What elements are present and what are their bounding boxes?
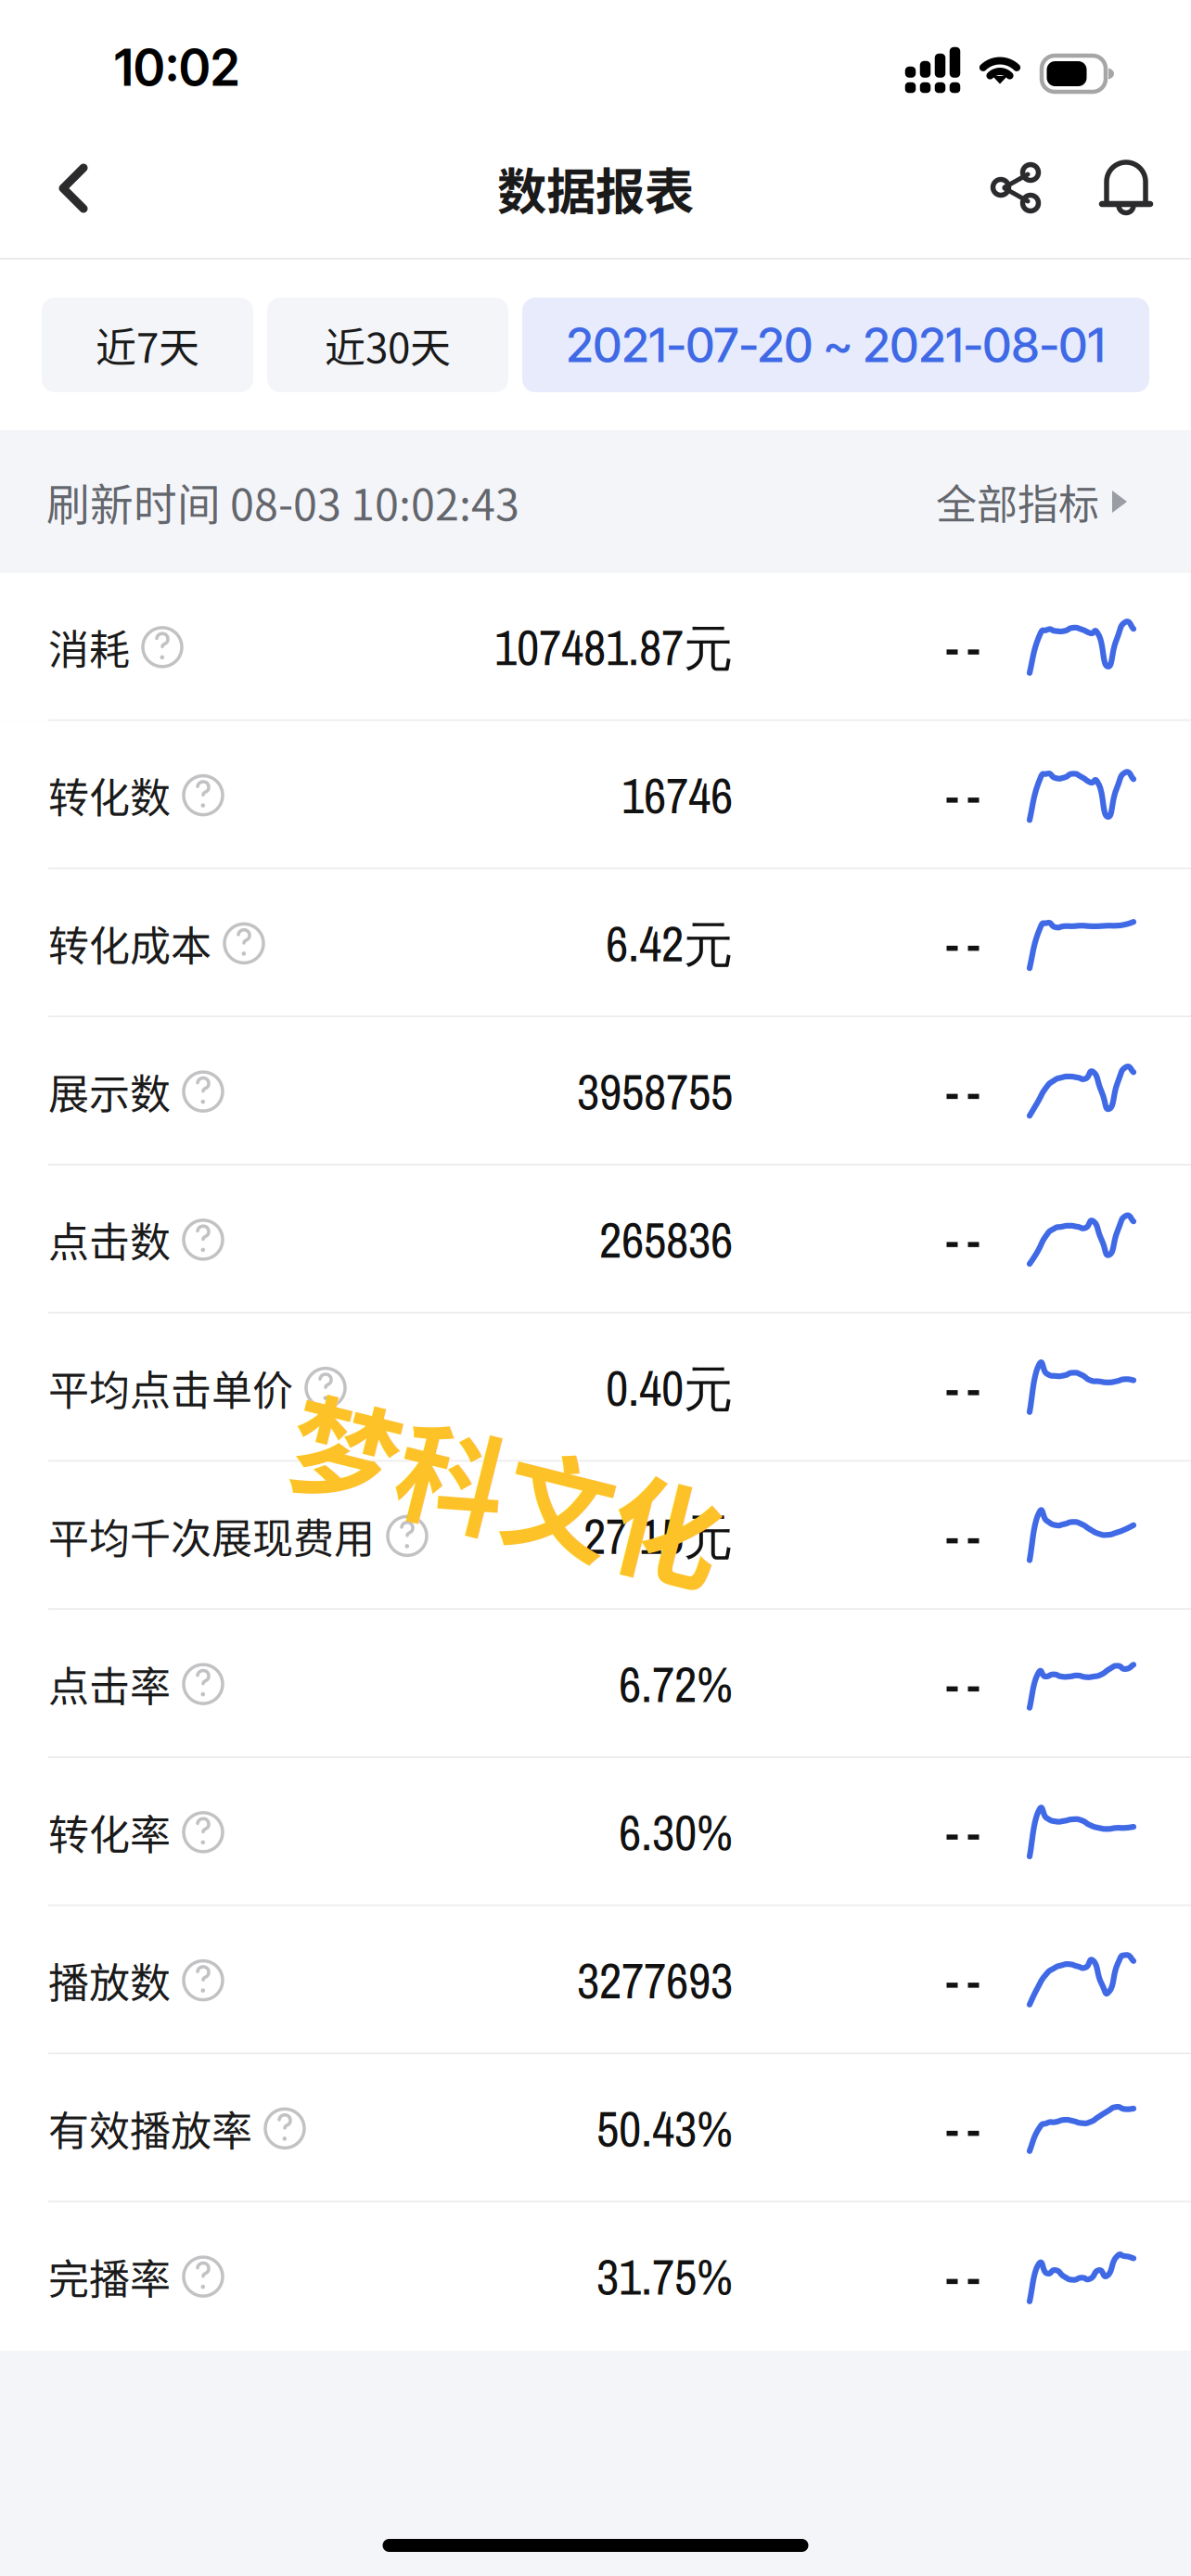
- staticText: 点击数: [48, 1210, 171, 1269]
- staticText: 6.72%: [619, 1651, 733, 1717]
- staticText: 2021-07-20 ~ 2021-08-01: [566, 316, 1105, 373]
- button[interactable]: 平均点击单价: [0, 1314, 1191, 1462]
- staticText: 近7天: [96, 315, 199, 374]
- staticText: 16746: [621, 762, 733, 829]
- staticText: 31.75%: [596, 2243, 733, 2310]
- staticText: 全部指标: [936, 472, 1099, 531]
- button[interactable]: 点击数: [0, 1166, 1191, 1314]
- button[interactable]: 展示数: [0, 1017, 1191, 1166]
- staticText: 数据报表: [497, 152, 694, 224]
- button[interactable]: 消耗: [0, 573, 1191, 721]
- staticText: 刷新时间 08-03 10:02:43: [46, 470, 519, 533]
- button[interactable]: 点击率: [0, 1610, 1191, 1758]
- staticText: 平均千次展现费用: [48, 1506, 375, 1565]
- button[interactable]: 完播率: [0, 2202, 1191, 2351]
- staticText: 近30天: [325, 315, 451, 374]
- staticText: 有效播放率: [48, 2099, 252, 2158]
- button[interactable]: 2021-07-20 ~ 2021-08-01: [522, 298, 1149, 392]
- button[interactable]: 播放数: [0, 1906, 1191, 2054]
- button[interactable]: 平均千次展现费用: [0, 1462, 1191, 1610]
- staticText: 6.42元: [606, 910, 733, 977]
- staticText: 点击率: [48, 1655, 171, 1714]
- button[interactable]: 近30天: [267, 298, 508, 392]
- staticText: 3277693: [577, 1947, 733, 2014]
- button[interactable]: Notifications: [1087, 139, 1165, 237]
- button[interactable]: 近7天: [42, 298, 253, 392]
- staticText: 10:02: [114, 38, 239, 98]
- staticText: 完播率: [48, 2247, 171, 2306]
- staticText: 转化数: [48, 766, 171, 825]
- staticText: 265836: [599, 1206, 733, 1273]
- button[interactable]: 转化数: [0, 721, 1191, 869]
- staticText: 播放数: [48, 1951, 171, 2010]
- staticText: 50.43%: [596, 2095, 733, 2162]
- staticText: 0.40元: [606, 1354, 733, 1421]
- staticText: 转化率: [48, 1803, 171, 1862]
- button[interactable]: 全部指标: [936, 444, 1127, 559]
- button[interactable]: 转化率: [0, 1758, 1191, 1906]
- button[interactable]: Share: [975, 141, 1057, 236]
- staticText: 107481.87元: [494, 614, 733, 680]
- staticText: 消耗: [48, 618, 130, 677]
- staticText: 27.15元: [583, 1503, 733, 1569]
- button[interactable]: 转化成本: [0, 869, 1191, 1018]
- staticText: 平均点击单价: [48, 1358, 293, 1417]
- staticText: 转化成本: [48, 914, 211, 973]
- staticText: 展示数: [48, 1062, 171, 1121]
- button[interactable]: Back: [28, 133, 119, 244]
- button[interactable]: 有效播放率: [0, 2054, 1191, 2203]
- staticText: 3958755: [577, 1058, 733, 1125]
- staticText: 梦科文化: [287, 1407, 728, 1566]
- staticText: 6.30%: [619, 1799, 733, 1866]
